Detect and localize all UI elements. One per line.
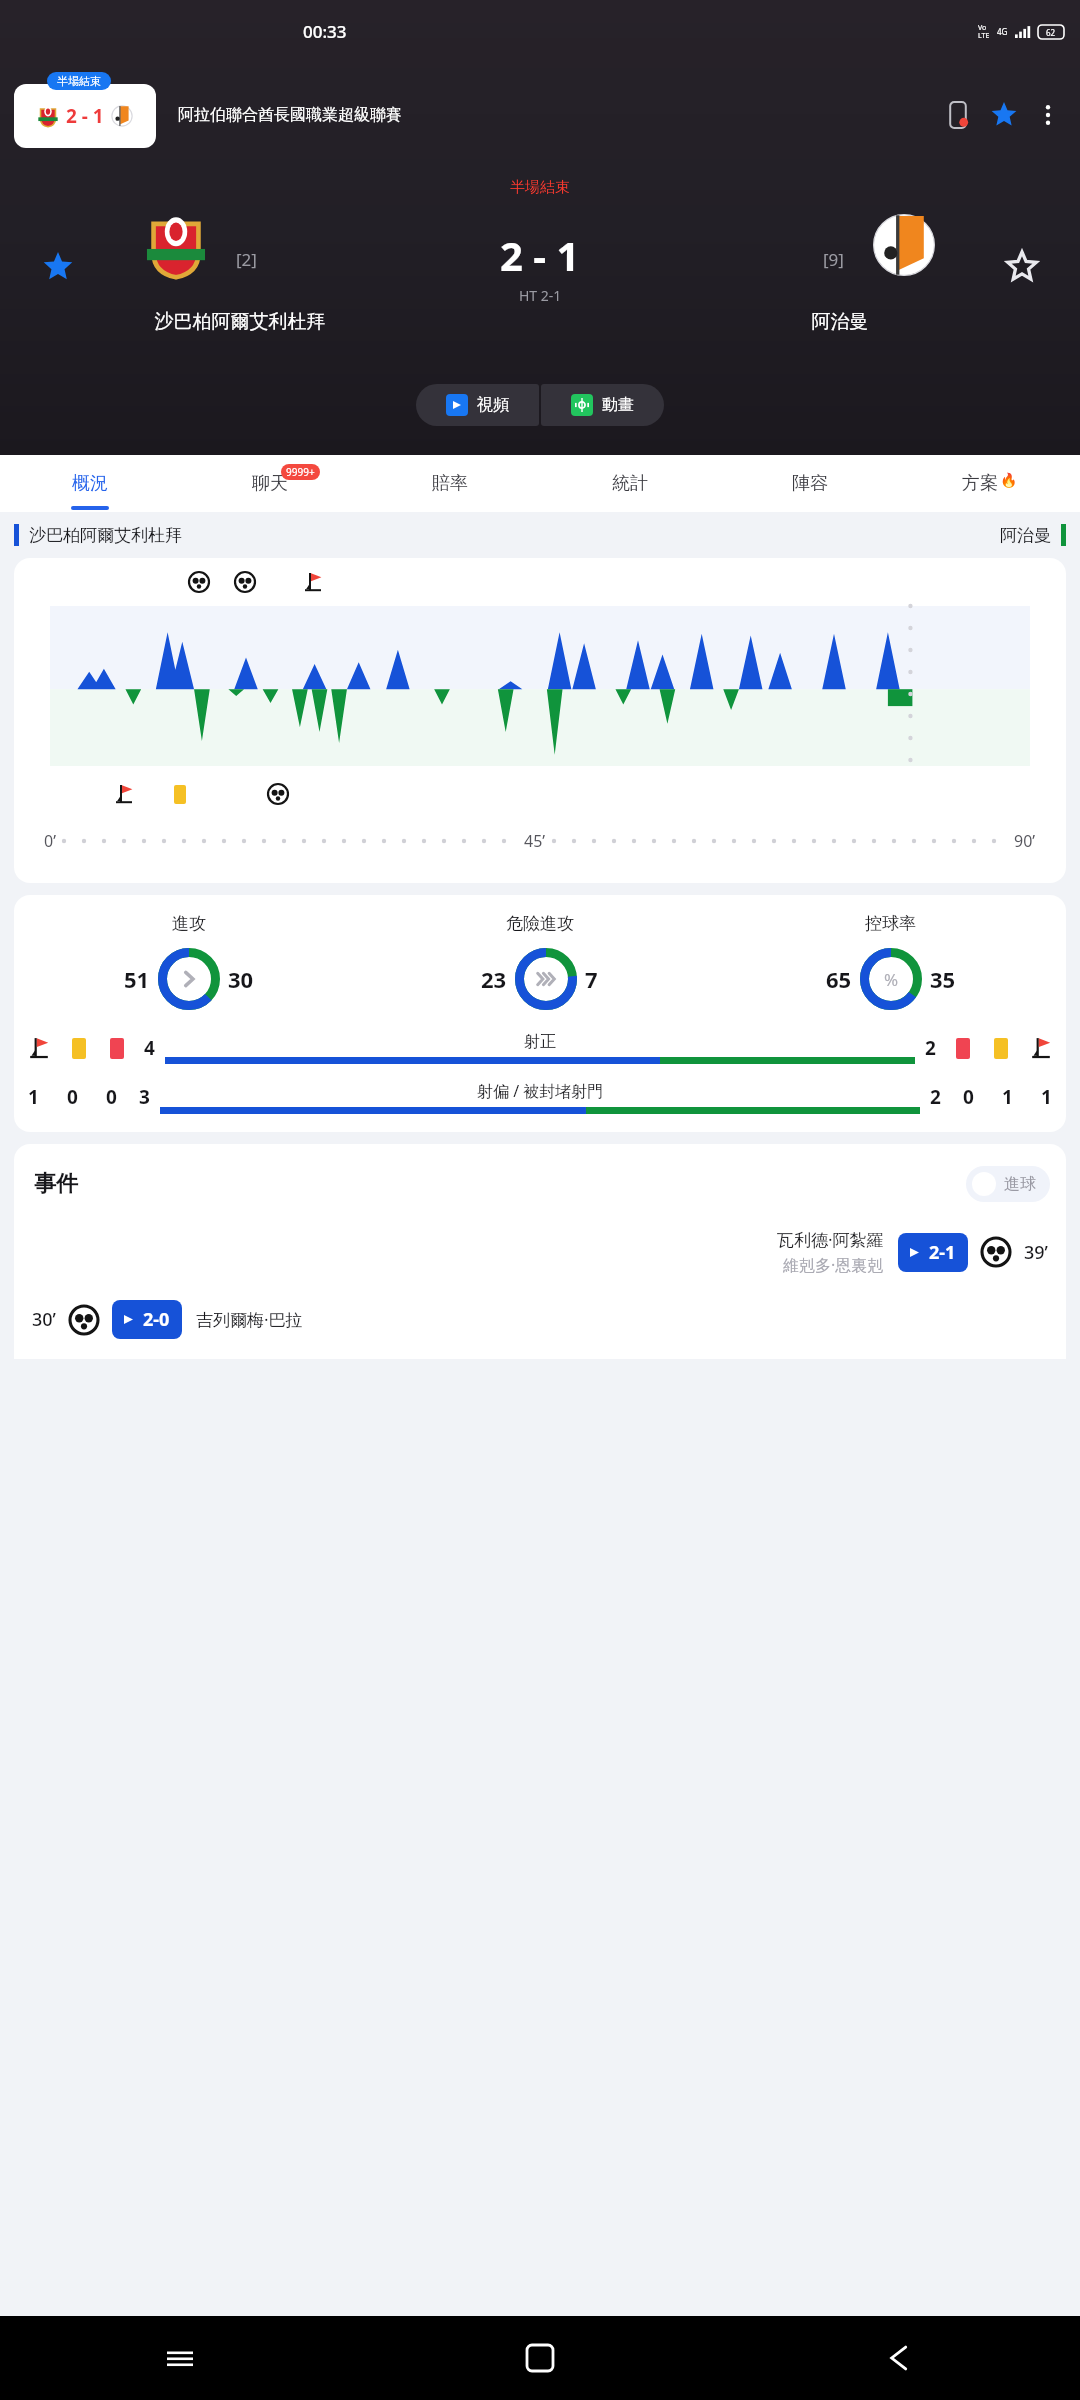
staticText: 39’ [1024, 1240, 1048, 1265]
button[interactable]: 2 - 1 [14, 84, 156, 148]
staticText: 51 [124, 964, 150, 994]
staticText: 動畫 [602, 395, 634, 415]
staticText: 9999+ [286, 465, 315, 479]
button[interactable]: Back [720, 2316, 1080, 2400]
staticText: 0’ [44, 830, 56, 852]
staticText: 62 [1046, 27, 1056, 38]
staticText: 0 [963, 1084, 974, 1110]
staticText: 進球 [1004, 1174, 1036, 1194]
staticText: 陣容 [792, 472, 828, 495]
staticText: 90’ [1014, 830, 1036, 852]
staticText: 2 [925, 1035, 936, 1061]
staticText: 00:33 [303, 20, 347, 43]
button[interactable]: 統計 [540, 455, 720, 512]
staticText: 統計 [612, 472, 648, 495]
staticText: 0 [106, 1084, 117, 1110]
staticText: 阿治曼 [600, 310, 1080, 334]
staticText: 0 [67, 1084, 78, 1110]
button[interactable]: 進球 [966, 1166, 1050, 1202]
staticText: 概況 [72, 472, 108, 495]
button[interactable]: Favorite [984, 95, 1024, 135]
staticText: 2 [930, 1084, 941, 1110]
staticText: 35 [930, 964, 956, 994]
staticText: 事件 [34, 1170, 78, 1198]
staticText: 吉列爾梅·巴拉 [196, 1308, 303, 1331]
button[interactable]: Home [360, 2316, 720, 2400]
staticText: 沙巴柏阿爾艾利杜拜 [29, 525, 182, 546]
button[interactable]: Notification [938, 95, 978, 135]
staticText: 45’ [524, 830, 546, 852]
staticText: 4 [144, 1035, 155, 1061]
staticText: 維剋多·恩裏剋 [783, 1254, 884, 1276]
button[interactable]: Recents [0, 2316, 360, 2400]
button[interactable]: 聊天 [180, 455, 360, 512]
staticText: HT 2-1 [519, 286, 562, 305]
button[interactable]: 方案 [900, 455, 1080, 512]
staticText: 視頻 [477, 395, 509, 415]
staticText: 1 [1002, 1084, 1013, 1110]
button[interactable]: Favorite away team [964, 212, 1080, 322]
button[interactable]: 賠率 [360, 455, 540, 512]
staticText: 進攻 [172, 913, 206, 934]
staticText: 方案 [962, 472, 998, 495]
button[interactable]: 概況 [0, 455, 180, 512]
button[interactable]: 視頻 [416, 384, 539, 426]
staticText: Vo LTE [978, 23, 990, 40]
staticText: 1 [28, 1084, 39, 1110]
staticText: 4G [997, 26, 1008, 37]
staticText: 射偏 / 被封堵射門 [477, 1080, 604, 1102]
button[interactable]: 動畫 [541, 384, 664, 426]
staticText: 阿拉伯聯合酋長國職業超級聯賽 [178, 105, 938, 125]
staticText: 半場結束 [510, 178, 570, 197]
button[interactable]: 陣容 [720, 455, 900, 512]
staticText: 🔥 [1000, 472, 1018, 488]
staticText: 1 [1041, 1084, 1052, 1110]
staticText: [9] [823, 248, 844, 271]
staticText: 半場結束 [57, 74, 101, 88]
button[interactable]: 30’ [32, 1300, 1048, 1339]
staticText: 瓦利德·阿紮羅 [777, 1228, 884, 1251]
staticText: 30’ [32, 1307, 56, 1332]
staticText: 沙巴柏阿爾艾利杜拜 [0, 310, 480, 334]
staticText: 65 [826, 964, 852, 994]
staticText: % [884, 968, 899, 991]
staticText: 射正 [524, 1032, 556, 1052]
staticText: 7 [585, 964, 598, 994]
staticText: 2-0 [143, 1307, 170, 1332]
button[interactable]: Favorite home team [0, 212, 116, 322]
staticText: 控球率 [865, 913, 916, 934]
staticText: 3 [139, 1084, 150, 1110]
staticText: 賠率 [432, 472, 468, 495]
button[interactable]: 瓦利德·阿紮羅 [32, 1228, 1048, 1276]
staticText: [2] [236, 248, 257, 271]
staticText: 23 [481, 964, 507, 994]
button[interactable]: More options [1030, 97, 1066, 133]
staticText: 阿治曼 [1000, 525, 1051, 546]
staticText: 危險進攻 [506, 913, 574, 934]
staticText: 2-1 [929, 1240, 956, 1265]
staticText: 2 - 1 [500, 228, 580, 282]
staticText: 30 [228, 964, 254, 994]
staticText: 2 - 1 [66, 103, 104, 129]
staticText: 聊天 [252, 472, 288, 495]
